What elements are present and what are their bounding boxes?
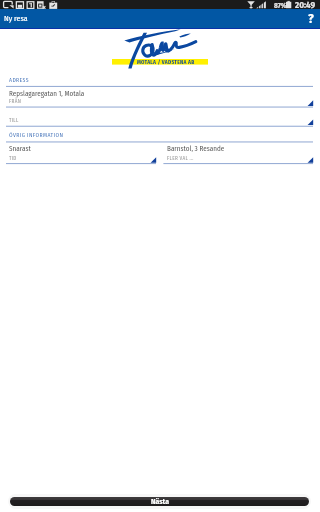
staticText: Repslagaregatan 1, Motala — [9, 89, 85, 98]
staticText: MOTALA / VADSTENA AB — [137, 59, 195, 65]
staticText: ? — [308, 11, 314, 27]
staticText: ÖVRIG INFORMATION — [9, 132, 64, 139]
staticText: Snarast — [9, 144, 31, 153]
staticText: Nästa — [151, 497, 169, 506]
button[interactable] — [6, 86, 313, 107]
staticText: Barnstol, 3 Resande — [167, 144, 225, 153]
staticText: FRÅN — [9, 98, 22, 104]
staticText: TILL — [9, 117, 19, 123]
button[interactable]: Nästa — [10, 497, 309, 506]
staticText: ADRESS — [9, 77, 29, 84]
staticText: 87% — [274, 1, 287, 10]
button[interactable] — [6, 107, 313, 126]
button[interactable]: Help — [300, 9, 320, 28]
staticText: Ny resa — [4, 14, 28, 23]
staticText: 20:49 — [295, 0, 316, 9]
staticText: FLER VAL ... — [167, 155, 194, 161]
button[interactable] — [6, 142, 156, 163]
button[interactable] — [163, 142, 313, 163]
staticText: TID — [9, 155, 17, 161]
